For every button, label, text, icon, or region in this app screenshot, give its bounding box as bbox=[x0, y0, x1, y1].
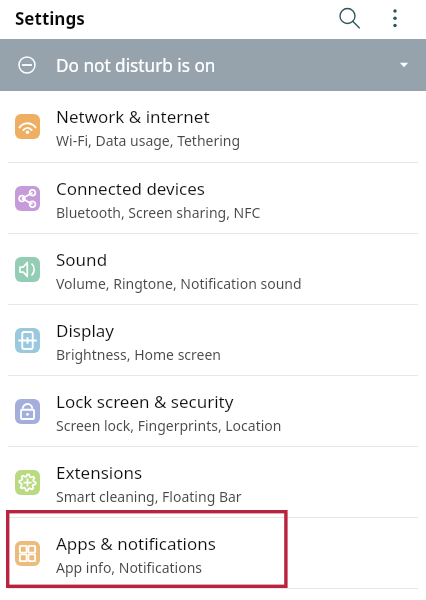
staticText: Do not disturb is on bbox=[56, 54, 216, 77]
staticText: Smart cleaning, Floating Bar bbox=[56, 487, 242, 506]
button[interactable]: Extensions bbox=[0, 447, 426, 517]
button[interactable]: Display bbox=[0, 305, 426, 375]
button[interactable]: Connected devices bbox=[0, 163, 426, 233]
staticText: Lock screen & security bbox=[56, 390, 234, 413]
button[interactable]: Sound bbox=[0, 234, 426, 304]
staticText: Volume, Ringtone, Notification sound bbox=[56, 274, 302, 293]
staticText: Wi-Fi, Data usage, Tethering bbox=[56, 131, 241, 150]
staticText: Extensions bbox=[56, 461, 143, 484]
staticText: Bluetooth, Screen sharing, NFC bbox=[56, 203, 261, 222]
button[interactable]: Search bbox=[329, 0, 365, 33]
button[interactable]: Network & internet bbox=[0, 91, 426, 162]
staticText: Settings bbox=[15, 7, 85, 30]
staticText: Network & internet bbox=[56, 105, 210, 128]
button[interactable]: Do not disturb is on bbox=[0, 39, 426, 91]
staticText: Display bbox=[56, 319, 114, 342]
staticText: Connected devices bbox=[56, 177, 206, 200]
button[interactable]: Apps & notifications bbox=[0, 518, 426, 588]
staticText: Apps & notifications bbox=[56, 532, 216, 555]
staticText: Sound bbox=[56, 248, 108, 271]
staticText: App info, Notifications bbox=[56, 558, 203, 577]
button[interactable]: More options bbox=[377, 0, 413, 36]
staticText: Brightness, Home screen bbox=[56, 345, 222, 364]
button[interactable]: Lock screen & security bbox=[0, 376, 426, 446]
staticText: Screen lock, Fingerprints, Location bbox=[56, 416, 282, 435]
